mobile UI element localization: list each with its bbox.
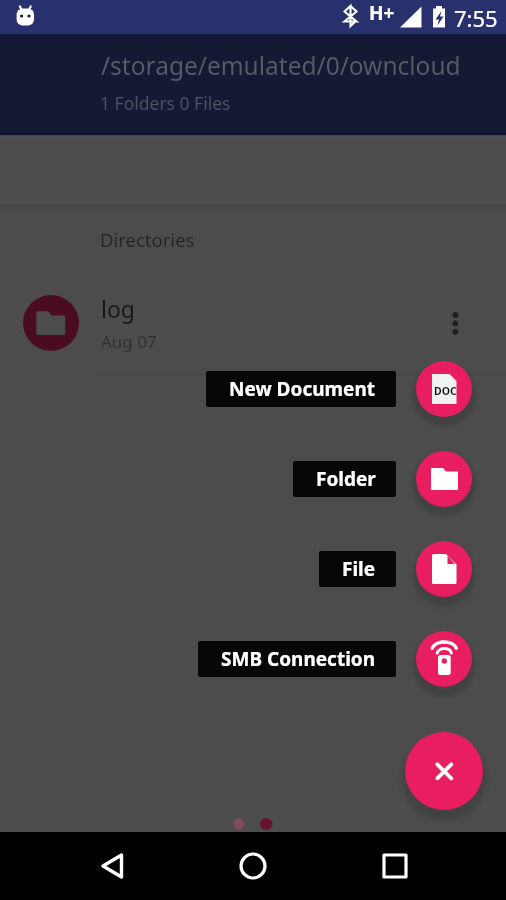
staticText: SMB Connection xyxy=(221,646,376,672)
button[interactable]: Folder xyxy=(416,451,472,507)
staticText: 7:55 xyxy=(454,3,498,33)
button[interactable]: Home xyxy=(229,832,277,900)
staticText: Directories xyxy=(100,227,195,252)
staticText: File xyxy=(342,556,376,582)
button[interactable]: More options xyxy=(433,300,479,346)
staticText: Aug 07 xyxy=(101,330,157,353)
button[interactable]: Folder xyxy=(293,461,396,497)
staticText: New Document xyxy=(229,376,376,402)
button[interactable]: File xyxy=(416,541,472,597)
staticText: DOC xyxy=(434,384,457,398)
button[interactable]: Recents xyxy=(371,832,419,900)
button[interactable]: New Document xyxy=(416,361,472,417)
staticText: Folder xyxy=(316,466,376,492)
staticText: 1 Folders 0 Files xyxy=(100,91,231,115)
button[interactable]: New Document xyxy=(206,371,396,407)
button[interactable]: Close menu xyxy=(405,732,483,810)
button[interactable]: Back xyxy=(89,832,137,900)
button[interactable]: log xyxy=(0,276,506,370)
staticText: log xyxy=(101,293,135,324)
staticText: H+ xyxy=(369,0,395,26)
button[interactable]: File xyxy=(319,551,396,587)
button[interactable]: SMB Connection xyxy=(198,641,396,677)
button[interactable]: SMB Connection xyxy=(416,631,472,687)
staticText: /storage/emulated/0/owncloud xyxy=(101,49,461,82)
